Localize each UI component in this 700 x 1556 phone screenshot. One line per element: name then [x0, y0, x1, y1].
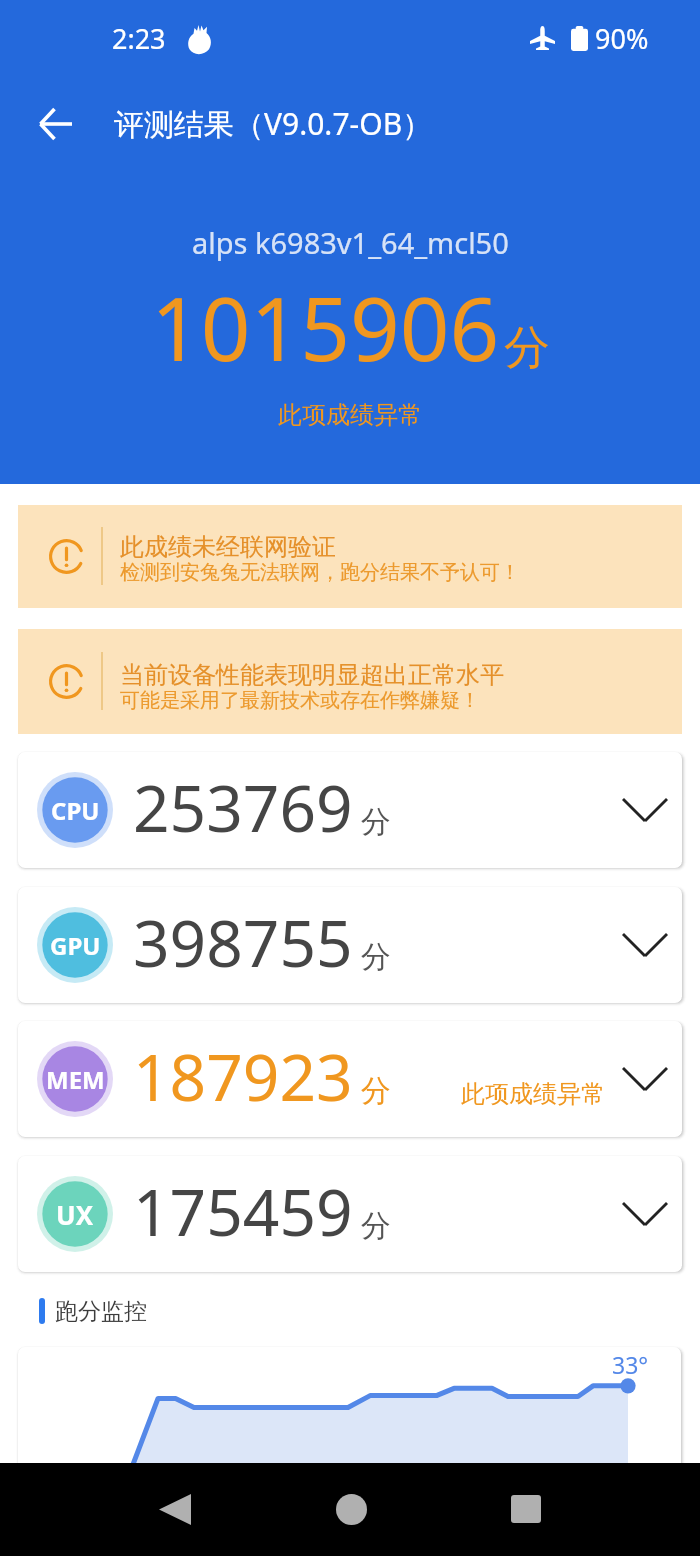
button[interactable]: 此成绩未经联网验证	[18, 505, 682, 608]
button[interactable]: Back	[135, 1478, 215, 1540]
button[interactable]: Back	[24, 93, 86, 155]
button[interactable]: Expand	[610, 910, 680, 980]
staticText: 此项成绩异常	[278, 400, 422, 430]
staticText: GPU	[50, 929, 101, 962]
staticText: 分	[361, 1072, 391, 1110]
staticText: 398755	[133, 899, 353, 986]
staticText: 175459	[133, 1168, 353, 1255]
button[interactable]: GPU	[18, 887, 682, 1003]
staticText: 分	[361, 803, 391, 841]
staticText: 分	[361, 1207, 391, 1245]
button[interactable]: Expand	[610, 775, 680, 845]
staticText: 187923	[133, 1033, 353, 1120]
button[interactable]: Recent apps	[486, 1478, 566, 1540]
button[interactable]: CPU	[18, 752, 682, 868]
staticText: 当前设备性能表现明显超出正常水平	[120, 660, 504, 690]
staticText: 2:23	[112, 20, 166, 57]
staticText: 此项成绩异常	[461, 1079, 605, 1109]
staticText: alps k6983v1_64_mcl50	[192, 223, 509, 262]
staticText: 分	[504, 319, 550, 377]
staticText: 分	[361, 938, 391, 976]
button[interactable]: Home	[311, 1478, 391, 1540]
staticText: 90%	[595, 20, 649, 57]
staticText: CPU	[51, 794, 100, 827]
staticText: MEM	[46, 1063, 105, 1096]
button[interactable]: Expand	[610, 1179, 680, 1249]
staticText: 此成绩未经联网验证	[120, 532, 336, 562]
staticText: 检测到安兔兔无法联网，跑分结果不予认可！	[120, 560, 520, 585]
staticText: 可能是采用了最新技术或存在作弊嫌疑！	[120, 688, 480, 713]
button[interactable]: Expand	[610, 1044, 680, 1114]
staticText: 跑分监控	[55, 1297, 147, 1326]
staticText: UX	[56, 1197, 94, 1232]
staticText: 1015906	[151, 268, 500, 386]
button[interactable]: 当前设备性能表现明显超出正常水平	[18, 629, 682, 734]
staticText: 33°	[612, 1349, 649, 1380]
button[interactable]: MEM	[18, 1021, 682, 1137]
staticText: 评测结果（V9.0.7-OB）	[114, 103, 433, 144]
staticText: 253769	[133, 764, 353, 851]
button[interactable]: UX	[18, 1156, 682, 1272]
